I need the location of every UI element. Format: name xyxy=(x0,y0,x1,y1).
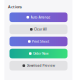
button[interactable]: Print Sheet xyxy=(9,37,67,46)
staticText: Order Now xyxy=(33,51,48,56)
staticText: Auto Arrange xyxy=(30,15,50,19)
button[interactable]: Auto Arrange xyxy=(9,12,67,22)
staticText: Print Sheet xyxy=(32,39,49,44)
button[interactable]: Order Now xyxy=(9,49,67,58)
button[interactable]: Download Preview xyxy=(9,61,67,70)
staticText: Actions xyxy=(8,4,22,9)
staticText: Download Preview xyxy=(26,64,54,68)
staticText: Clear All xyxy=(34,27,47,31)
button[interactable]: Clear All xyxy=(9,25,67,34)
